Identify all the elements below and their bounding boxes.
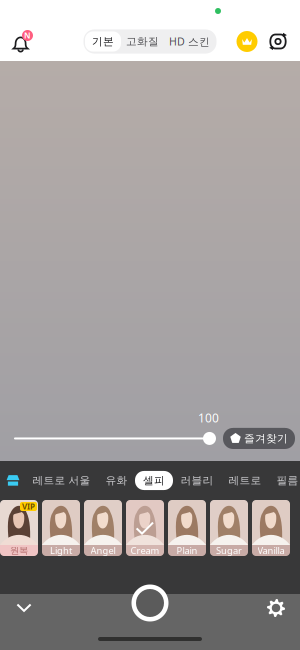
button[interactable]: 즐겨찾기: [223, 428, 295, 449]
staticText: HD 스킨: [169, 34, 210, 49]
staticText: Plain: [176, 544, 197, 557]
button[interactable]: HD 스킨: [164, 31, 215, 52]
staticText: N: [24, 30, 31, 41]
button[interactable]: Settings: [259, 595, 293, 621]
button[interactable]: Sugar: [210, 500, 248, 556]
staticText: Cream: [130, 544, 159, 557]
button[interactable]: 유화: [98, 471, 135, 490]
staticText: 즐겨찾기: [244, 432, 288, 445]
button[interactable]: VIP: [235, 29, 259, 53]
staticText: 유화: [105, 474, 127, 487]
staticText: 러블리: [180, 474, 213, 487]
button[interactable]: 레트로: [221, 471, 269, 490]
button[interactable]: 필름: [269, 471, 300, 490]
staticText: 필름: [276, 474, 298, 487]
button[interactable]: Cream: [126, 500, 164, 556]
button[interactable]: 고화질: [121, 31, 164, 51]
button[interactable]: Take photo: [130, 583, 170, 623]
staticText: 기본: [92, 35, 114, 48]
button[interactable]: Light: [42, 500, 80, 556]
staticText: Sugar: [216, 544, 242, 557]
staticText: Light: [50, 544, 72, 557]
button[interactable]: Angel: [84, 500, 122, 556]
staticText: 레트로 서울: [32, 474, 90, 487]
button[interactable]: Filter store: [0, 468, 25, 492]
button[interactable]: 셀피: [135, 471, 173, 490]
button[interactable]: 기본: [85, 31, 121, 51]
button[interactable]: 레트로 서울: [25, 471, 98, 490]
button[interactable]: 원복: [0, 500, 38, 556]
button[interactable]: Hide filters: [7, 595, 41, 621]
staticText: 셀피: [143, 474, 165, 487]
button[interactable]: Vanilla: [252, 500, 290, 556]
staticText: Angel: [90, 544, 115, 557]
button[interactable]: Plain: [168, 500, 206, 556]
staticText: 레트로: [228, 474, 261, 487]
staticText: 100: [198, 410, 219, 426]
staticText: VIP: [22, 501, 35, 512]
button[interactable]: Notifications: [10, 29, 34, 54]
staticText: 원복: [10, 545, 28, 556]
button[interactable]: Switch camera: [266, 29, 290, 53]
button[interactable]: 러블리: [173, 471, 221, 490]
staticText: 고화질: [126, 35, 159, 48]
staticText: Vanilla: [257, 544, 284, 557]
